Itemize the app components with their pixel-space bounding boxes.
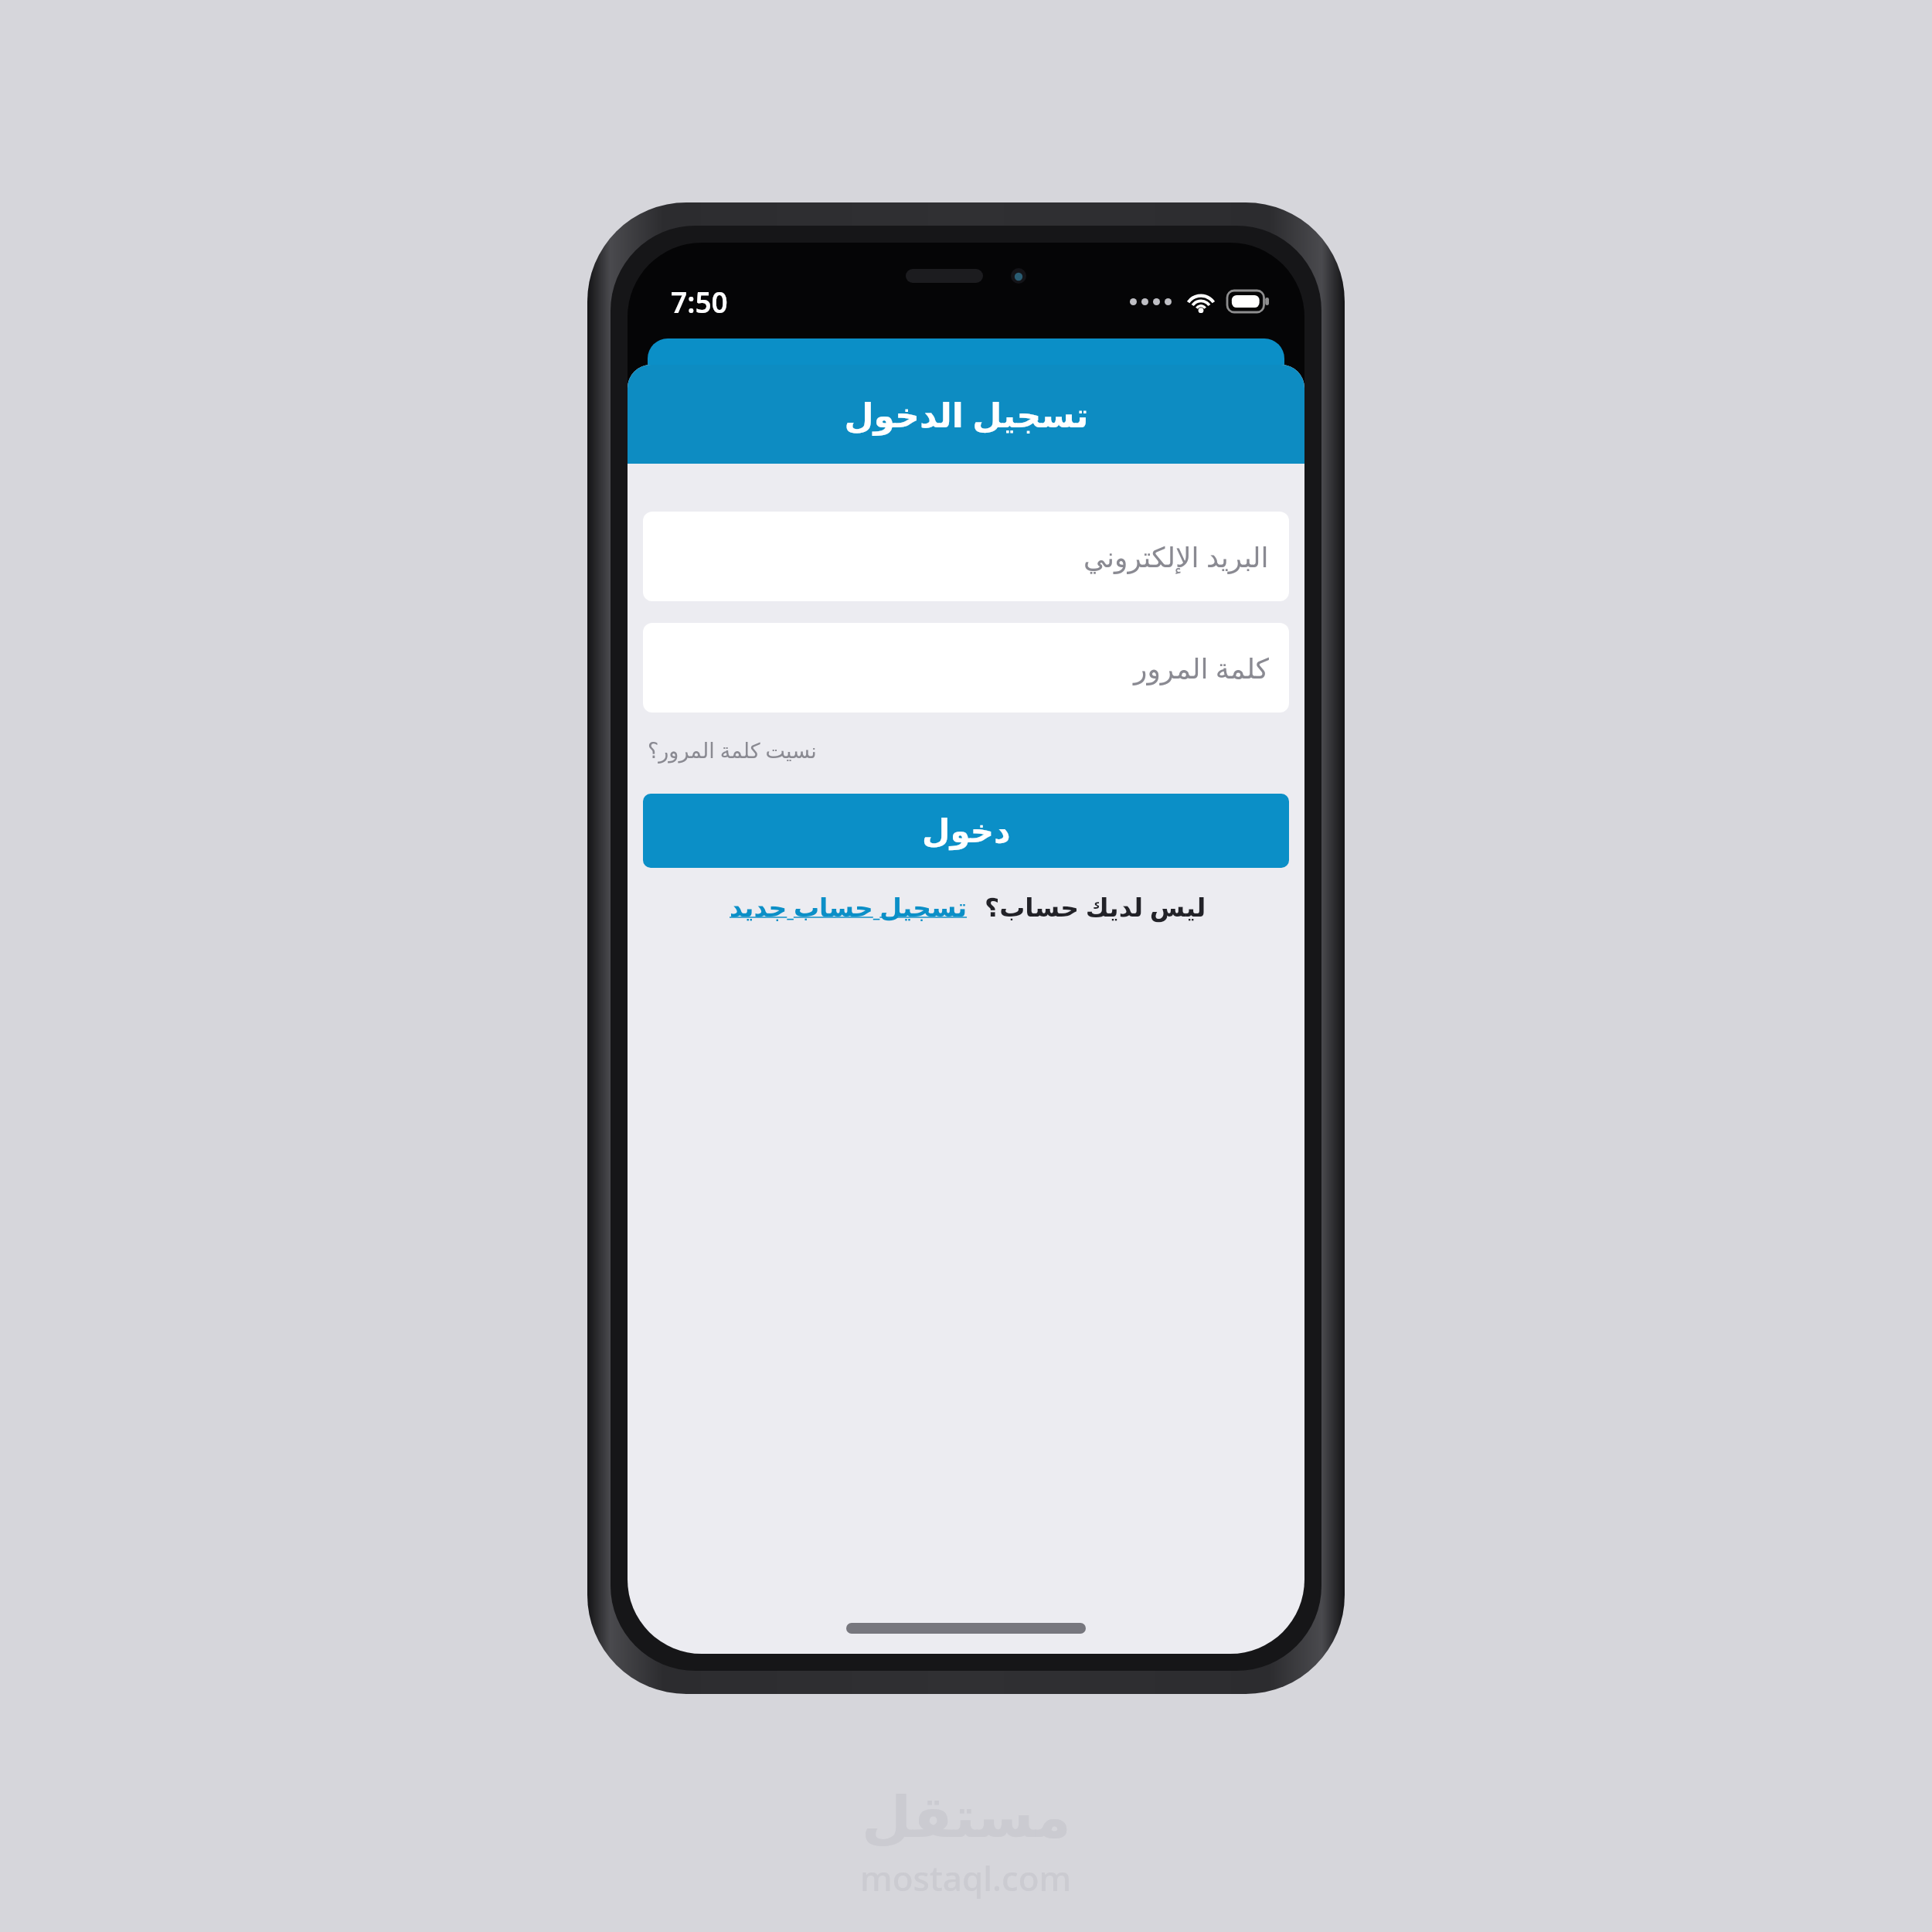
staticText: مستقل bbox=[862, 1784, 1071, 1850]
staticText: تسجيل الدخول bbox=[844, 391, 1089, 437]
button[interactable]: دخول bbox=[643, 794, 1289, 868]
staticText: نسيت كلمة المرور؟ bbox=[648, 736, 817, 764]
staticText: تسجيل حساب جديد bbox=[730, 889, 968, 924]
other: Wi-Fi bbox=[1185, 290, 1216, 313]
staticText: ليس لديك حساب؟ bbox=[985, 889, 1206, 924]
staticText: دخول bbox=[922, 812, 1011, 850]
other: Battery bbox=[1227, 291, 1269, 312]
staticText: 7:50 bbox=[671, 282, 728, 321]
staticText: البريد الإلكتروني bbox=[1083, 538, 1269, 576]
staticText: mostaql.com bbox=[860, 1855, 1072, 1901]
button[interactable]: البريد الإلكتروني bbox=[643, 512, 1289, 601]
button[interactable]: تسجيل حساب جديد bbox=[726, 885, 971, 929]
staticText: كلمة المرور bbox=[1134, 649, 1269, 687]
button[interactable]: نسيت كلمة المرور؟ bbox=[643, 730, 821, 770]
button[interactable]: كلمة المرور bbox=[643, 623, 1289, 713]
